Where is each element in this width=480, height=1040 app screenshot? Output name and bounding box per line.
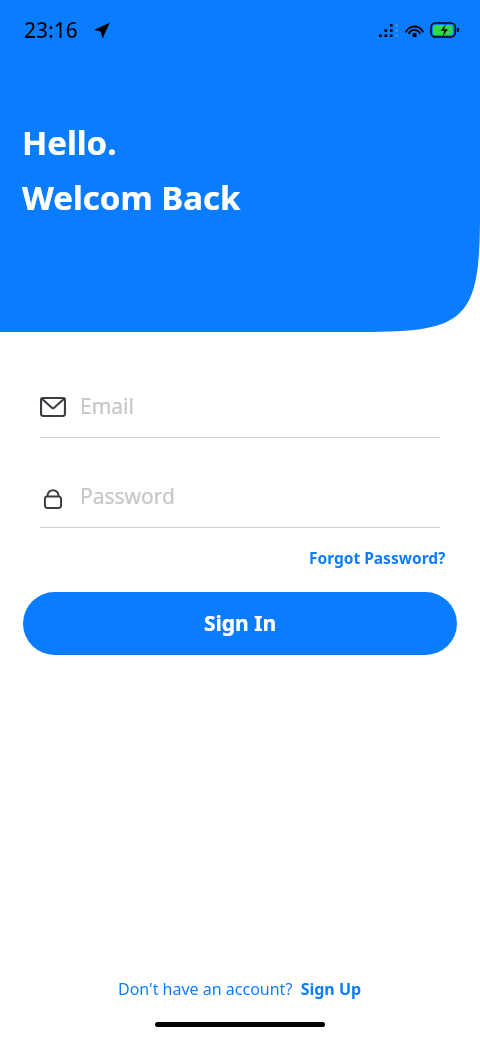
staticText: Email	[80, 392, 134, 421]
button[interactable]: Password	[40, 482, 440, 528]
button[interactable]: Sign In	[23, 592, 457, 655]
button[interactable]: Forgot Password?	[305, 544, 450, 571]
staticText: Password	[80, 482, 175, 511]
button[interactable]: Email	[40, 392, 440, 438]
staticText: Sign In	[204, 609, 277, 638]
staticText: Welcom Back	[22, 175, 241, 220]
staticText: Don't have an account? Sign Up	[118, 978, 362, 1000]
staticText: Hello.	[22, 120, 117, 165]
button[interactable]: Don't have an account? Sign Up	[110, 974, 370, 1004]
staticText: 23:16	[24, 16, 78, 45]
staticText: Forgot Password?	[309, 547, 446, 568]
